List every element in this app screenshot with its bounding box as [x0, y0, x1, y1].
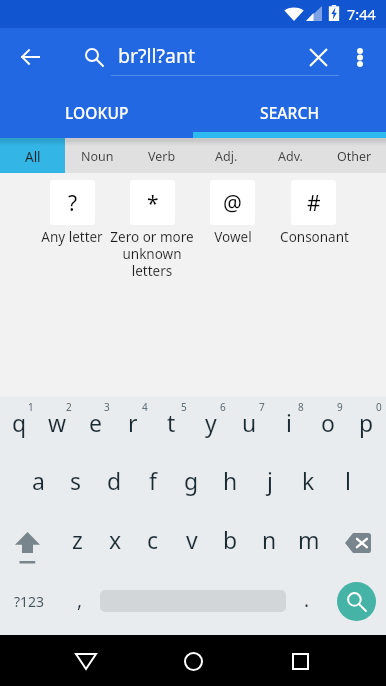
staticText: Verb	[148, 148, 176, 165]
button[interactable]: LOOKUP	[0, 92, 193, 138]
button[interactable]: *	[112, 180, 192, 280]
button[interactable]: Search	[337, 582, 376, 621]
button[interactable]: ,	[59, 577, 100, 635]
button[interactable]: @	[192, 180, 273, 246]
staticText: 5	[181, 400, 187, 414]
staticText: 6	[220, 400, 226, 414]
button[interactable]: q	[0, 397, 38, 457]
button[interactable]: p	[347, 397, 386, 457]
staticText: w	[48, 407, 67, 438]
button[interactable]: n	[250, 517, 289, 577]
button[interactable]: v	[172, 517, 211, 577]
button[interactable]: j	[250, 457, 289, 517]
staticText: Any letter	[41, 228, 103, 246]
staticText: #	[307, 189, 321, 218]
staticText: SEARCH	[260, 102, 320, 123]
button[interactable]: #	[273, 180, 354, 246]
button[interactable]: m	[289, 517, 328, 577]
staticText: l	[345, 465, 351, 496]
staticText: a	[32, 465, 45, 496]
button[interactable]: Noun	[65, 138, 130, 173]
button[interactable]: y	[191, 397, 230, 457]
button[interactable]: Adv.	[258, 138, 322, 173]
button[interactable]: l	[328, 457, 367, 517]
button[interactable]: All	[0, 138, 65, 173]
staticText: 2	[66, 400, 72, 414]
staticText: j	[267, 465, 273, 496]
staticText: Adj.	[215, 148, 238, 165]
staticText: 3	[104, 400, 110, 414]
button[interactable]: e	[76, 397, 114, 457]
button[interactable]: g	[172, 457, 211, 517]
button[interactable]: Back	[10, 37, 50, 77]
staticText: t	[167, 407, 176, 438]
staticText: s	[70, 465, 82, 496]
staticText: h	[223, 465, 238, 496]
staticText: *	[147, 189, 159, 218]
staticText: .	[304, 587, 310, 613]
staticText: Consonant	[280, 228, 349, 246]
button[interactable]: w	[38, 397, 76, 457]
button[interactable]: Other	[322, 138, 386, 173]
staticText: ,	[77, 587, 83, 613]
staticText: o	[321, 407, 335, 438]
button[interactable]: Recents	[260, 635, 340, 686]
button[interactable]: a	[19, 457, 57, 517]
staticText: Other	[337, 148, 372, 165]
button[interactable]: f	[133, 457, 172, 517]
staticText: All	[25, 148, 41, 166]
button[interactable]: Home	[153, 635, 233, 686]
staticText: r	[128, 407, 138, 438]
button[interactable]: o	[308, 397, 347, 457]
staticText: q	[12, 407, 27, 438]
staticText: u	[242, 407, 257, 438]
staticText: Noun	[81, 148, 114, 165]
button[interactable]: Backspace	[328, 517, 386, 577]
button[interactable]: .	[286, 577, 327, 635]
staticText: 0	[376, 400, 382, 414]
staticText: f	[149, 465, 157, 496]
button[interactable]: h	[211, 457, 250, 517]
staticText: 4	[142, 400, 148, 414]
staticText: m	[298, 524, 320, 555]
staticText: p	[359, 407, 374, 438]
button[interactable]: ?	[32, 180, 112, 246]
button[interactable]: u	[230, 397, 269, 457]
staticText: x	[109, 524, 122, 555]
button[interactable]: ?123	[0, 577, 59, 635]
button[interactable]: Back	[46, 635, 126, 686]
button[interactable]: Clear	[298, 37, 338, 77]
staticText: 1	[28, 400, 34, 414]
staticText: g	[184, 465, 199, 496]
staticText: y	[205, 407, 217, 438]
staticText: Vowel	[214, 228, 252, 246]
button[interactable]: Verb	[130, 138, 194, 173]
button[interactable]: x	[96, 517, 134, 577]
staticText: d	[107, 465, 122, 496]
button[interactable]: Adj.	[194, 138, 258, 173]
staticText: i	[286, 407, 292, 438]
staticText: LOOKUP	[65, 102, 129, 123]
staticText: k	[302, 465, 315, 496]
button[interactable]: z	[58, 517, 96, 577]
button[interactable]: r	[114, 397, 152, 457]
staticText: 9	[337, 400, 343, 414]
staticText: 7:44	[347, 4, 376, 24]
button[interactable]: s	[57, 457, 95, 517]
staticText: ?	[68, 189, 78, 218]
staticText: Adv.	[278, 148, 303, 165]
button[interactable]: k	[289, 457, 328, 517]
button[interactable]: b	[211, 517, 250, 577]
button[interactable]: c	[134, 517, 172, 577]
button[interactable]: d	[95, 457, 133, 517]
button[interactable]: More options	[340, 37, 380, 77]
button[interactable]: t	[152, 397, 191, 457]
staticText: z	[72, 524, 83, 555]
staticText: v	[186, 524, 198, 555]
button[interactable]: i	[269, 397, 308, 457]
staticText: c	[147, 524, 159, 555]
button[interactable]: SEARCH	[193, 92, 386, 138]
button[interactable]: Shift	[0, 517, 58, 577]
staticText: Zero or more unknown letters	[110, 228, 194, 280]
